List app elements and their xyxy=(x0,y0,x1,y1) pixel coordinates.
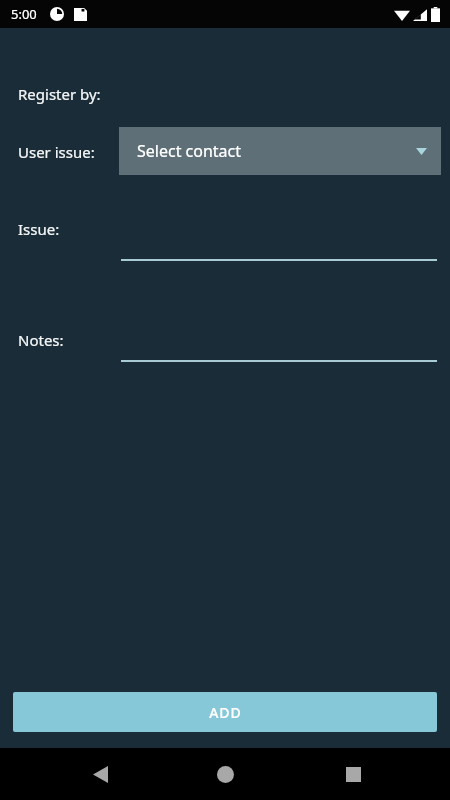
staticText: Notes: xyxy=(18,330,64,350)
staticText: 5:00 xyxy=(11,5,37,23)
staticText: Register by: xyxy=(18,84,101,104)
button[interactable]: Back xyxy=(78,752,122,796)
button[interactable]: ADD xyxy=(13,692,437,732)
button[interactable] xyxy=(121,326,437,362)
staticText: Issue: xyxy=(18,219,60,239)
staticText: User issue: xyxy=(18,142,95,162)
staticText: ADD xyxy=(209,703,242,722)
button[interactable]: Select contact xyxy=(119,127,441,175)
other: Open dropdown xyxy=(416,148,427,155)
button[interactable] xyxy=(121,225,437,261)
button[interactable]: Home xyxy=(203,752,247,796)
staticText: Select contact xyxy=(137,140,242,162)
button[interactable]: Recent apps xyxy=(331,752,375,796)
